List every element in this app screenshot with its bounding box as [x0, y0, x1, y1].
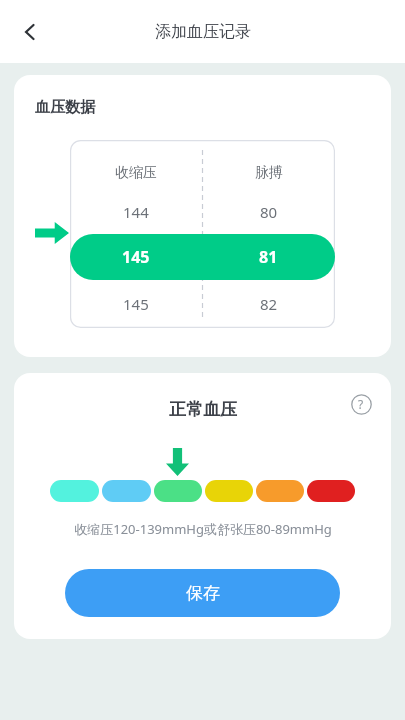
staticText: 80 [260, 202, 278, 222]
staticText: 正常血压 [169, 399, 237, 420]
staticText: 145 [122, 246, 150, 268]
staticText: 144 [123, 202, 149, 222]
staticText: ? [358, 396, 364, 412]
staticText: 保存 [186, 583, 220, 604]
staticText: 145 [123, 294, 149, 314]
staticText: 添加血压记录 [155, 22, 251, 42]
staticText: 收缩压120-139mmHg或舒张压80-89mmHg [74, 520, 332, 538]
button[interactable]: 保存 [65, 569, 340, 617]
staticText: 82 [260, 294, 278, 314]
button[interactable]: Help [346, 389, 376, 419]
staticText: 收缩压 [115, 164, 157, 182]
staticText: 脉搏 [255, 164, 283, 182]
button[interactable]: Back [8, 10, 52, 54]
staticText: 血压数据 [35, 98, 95, 117]
staticText: 81 [259, 246, 278, 268]
button[interactable]: 145 [70, 234, 335, 280]
